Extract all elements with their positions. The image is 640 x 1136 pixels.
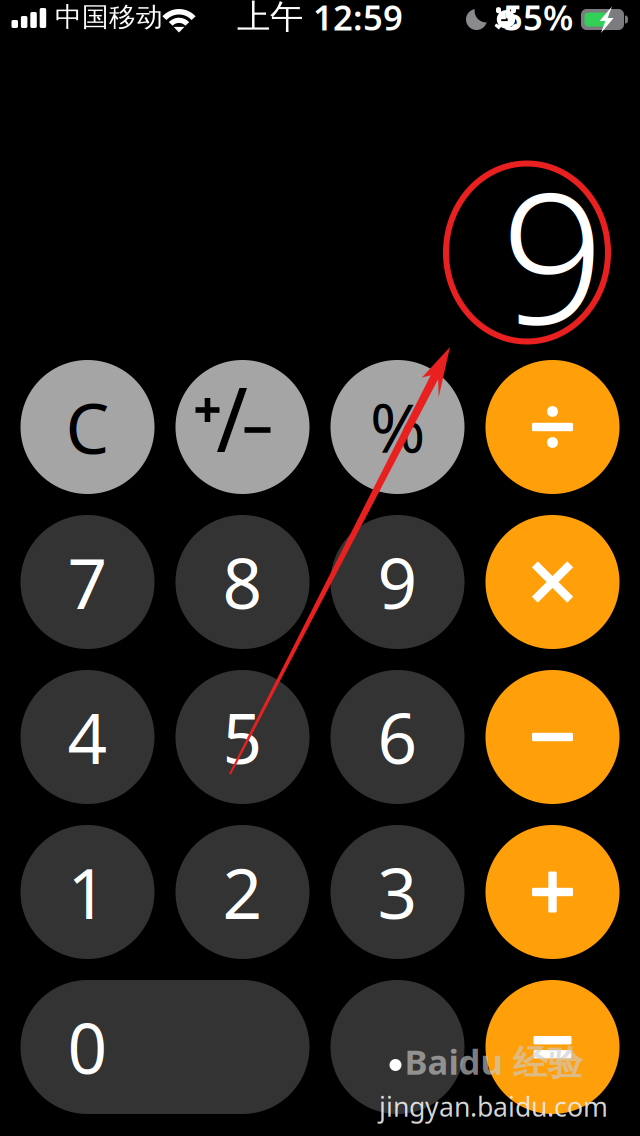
button[interactable]: 0 — [20, 980, 309, 1114]
button[interactable]: Minus — [485, 670, 619, 804]
button[interactable]: 3 — [330, 825, 464, 959]
staticText: 9 — [377, 536, 417, 628]
button[interactable]: 8 — [175, 515, 309, 649]
button[interactable]: 2 — [175, 825, 309, 959]
staticText: 1 — [67, 846, 107, 938]
staticText: C — [65, 381, 109, 473]
staticText: 8 — [222, 536, 262, 628]
staticText: 12:59 — [313, 0, 403, 40]
staticText: 4 — [67, 691, 107, 783]
button[interactable]: 5 — [175, 670, 309, 804]
button[interactable]: Plus — [485, 825, 619, 959]
button[interactable]: C — [20, 360, 154, 494]
button[interactable]: Decimal point — [330, 980, 464, 1114]
staticText: 3 — [377, 846, 417, 938]
staticText: 9 — [501, 133, 605, 374]
button[interactable]: 6 — [330, 670, 464, 804]
staticText: Baidu 经验 — [404, 1038, 582, 1085]
button[interactable]: Equals — [485, 980, 619, 1114]
staticText: 中国移动 — [55, 1, 163, 33]
staticText: 2 — [222, 846, 262, 938]
button[interactable]: Divide — [485, 360, 619, 494]
staticText: 55% — [503, 0, 573, 40]
staticText: % — [370, 383, 425, 471]
staticText: 0 — [67, 1001, 107, 1093]
staticText: 5 — [222, 691, 262, 783]
staticText: 6 — [377, 691, 417, 783]
button[interactable]: 9 — [330, 515, 464, 649]
staticText: 7 — [67, 536, 107, 628]
staticText: 上午 — [237, 0, 313, 37]
staticText: jingyan.baidu.com — [379, 1089, 608, 1124]
button[interactable]: Plus minus — [175, 360, 309, 494]
button[interactable]: Multiply — [485, 515, 619, 649]
button[interactable]: 7 — [20, 515, 154, 649]
button[interactable]: 1 — [20, 825, 154, 959]
button[interactable]: 4 — [20, 670, 154, 804]
button[interactable]: % — [330, 360, 464, 494]
